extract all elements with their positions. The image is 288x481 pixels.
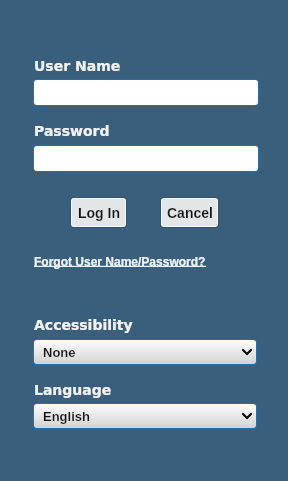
button[interactable]: User Name: [34, 80, 258, 105]
button[interactable]: Forgot User Name/Password?: [34, 255, 206, 268]
staticText: English: [43, 409, 90, 424]
staticText: Log In: [78, 205, 120, 221]
button[interactable]: Accessibility: [34, 340, 256, 364]
staticText: Cancel: [167, 205, 213, 221]
button[interactable]: Password: [34, 146, 258, 171]
staticText: Forgot User Name/Password?: [34, 255, 206, 268]
staticText: Accessibility: [34, 317, 133, 333]
button[interactable]: Cancel: [162, 199, 217, 226]
staticText: Language: [34, 382, 112, 398]
button[interactable]: Log In: [72, 199, 125, 226]
staticText: None: [43, 345, 76, 360]
button[interactable]: Language: [34, 404, 256, 428]
staticText: User Name: [34, 58, 121, 74]
staticText: Password: [34, 123, 110, 139]
